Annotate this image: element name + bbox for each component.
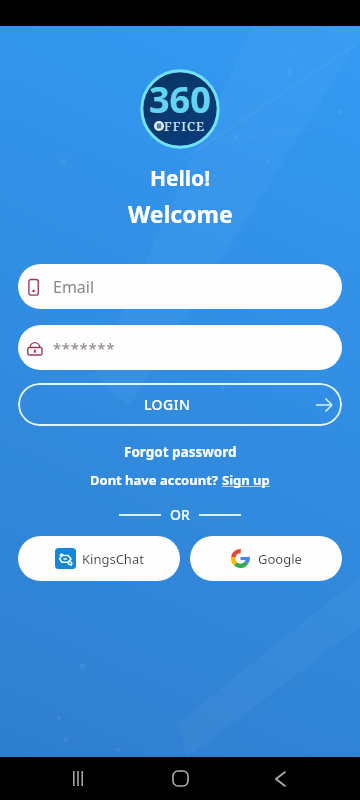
staticText: FFICE — [164, 117, 206, 135]
button[interactable]: Forgot password — [124, 443, 237, 461]
staticText: LOGIN — [144, 395, 191, 414]
staticText: OR — [170, 505, 190, 524]
staticText: ******* — [53, 338, 116, 358]
staticText: Hello! — [150, 164, 211, 193]
button[interactable]: Home — [150, 757, 210, 800]
button[interactable]: KingsChat — [18, 536, 180, 581]
button[interactable]: LOGIN — [18, 383, 342, 426]
button[interactable]: Back — [250, 757, 310, 800]
button[interactable]: Google — [190, 536, 342, 581]
staticText: KingsChat — [82, 550, 144, 568]
staticText: Google — [258, 550, 302, 568]
staticText: 360 — [149, 75, 211, 124]
staticText: Email — [53, 276, 95, 298]
staticText: Dont have account? — [90, 471, 222, 489]
button[interactable]: Email — [18, 264, 342, 309]
staticText: Welcome — [128, 198, 233, 229]
button[interactable]: ******* — [18, 325, 342, 370]
button[interactable]: Recent apps — [48, 757, 108, 800]
button[interactable]: Sign up — [222, 471, 270, 489]
